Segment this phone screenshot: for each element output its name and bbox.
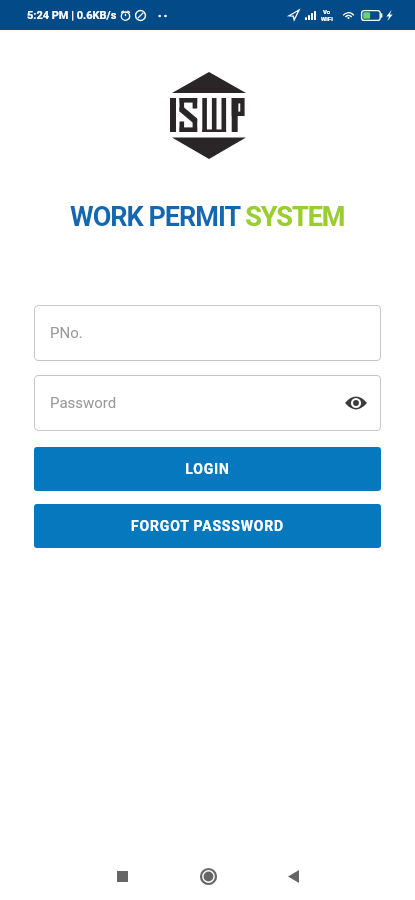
staticText: PNo. <box>50 324 83 342</box>
button[interactable]: FORGOT PASSSWORD <box>34 504 381 548</box>
button[interactable]: PNo. <box>34 305 381 361</box>
button[interactable]: LOGIN <box>34 447 381 491</box>
button[interactable]: Home <box>184 852 232 900</box>
staticText: Password <box>50 394 117 412</box>
button[interactable]: Password <box>34 375 381 431</box>
button[interactable]: Show password <box>343 390 369 416</box>
button[interactable]: Back <box>269 852 317 900</box>
staticText: WiFi <box>321 15 333 22</box>
staticText: LOGIN <box>185 461 230 477</box>
staticText: 5:24 PM | 0.6KB/s <box>27 9 117 22</box>
button[interactable]: Recent apps <box>98 852 146 900</box>
staticText: FORGOT PASSSWORD <box>131 518 284 534</box>
staticText: WORK PERMIT SYSTEM <box>70 201 345 233</box>
staticText: Vo <box>323 8 331 15</box>
